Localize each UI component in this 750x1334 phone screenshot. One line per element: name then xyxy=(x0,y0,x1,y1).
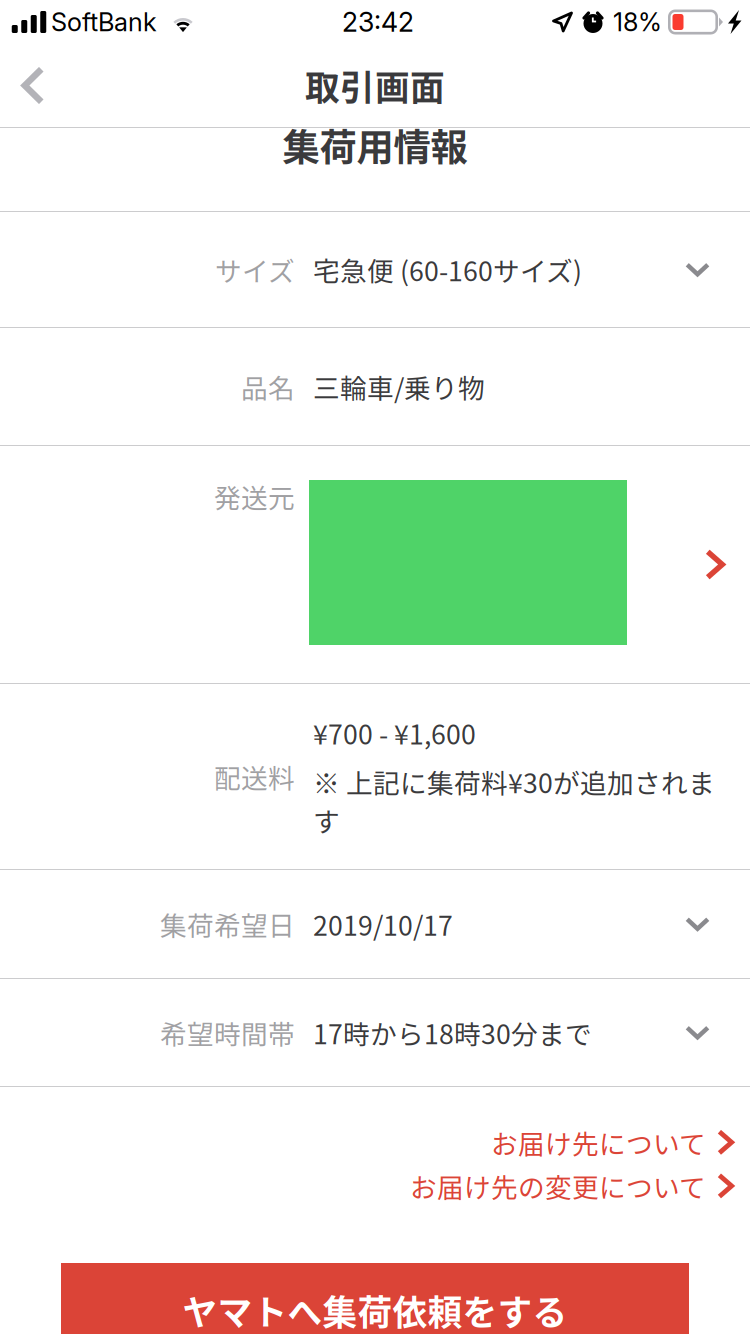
button[interactable]: 集荷希望日 xyxy=(0,870,750,978)
staticText: サイズ xyxy=(215,250,295,289)
staticText: お届け先について xyxy=(491,1123,706,1162)
staticText: 23:42 xyxy=(342,6,414,38)
staticText: 18% xyxy=(613,7,662,37)
button[interactable]: ヤマトへ集荷依頼をする xyxy=(61,1263,689,1334)
staticText: 希望時間帯 xyxy=(160,1013,295,1052)
staticText: ¥700 - ¥1,600 xyxy=(313,714,476,752)
staticText: 2019/10/17 xyxy=(313,905,453,943)
staticText: お届け先の変更について xyxy=(410,1167,706,1205)
staticText: ※ 上記に集荷料¥30が追加されます xyxy=(313,762,715,839)
button[interactable]: お届け先の変更について xyxy=(410,1167,734,1205)
staticText: 発送元 xyxy=(214,477,295,516)
button[interactable]: お届け先について xyxy=(491,1123,734,1162)
staticText: 宅急便 (60-160サイズ) xyxy=(313,250,582,289)
staticText: 配送料 xyxy=(214,757,295,796)
staticText: 取引画面 xyxy=(305,60,445,111)
staticText: 集荷用情報 xyxy=(282,118,467,172)
staticText: 品名 xyxy=(241,367,295,406)
button[interactable]: 発送元 xyxy=(0,446,750,683)
staticText: 三輪車/乗り物 xyxy=(313,367,485,406)
staticText: ヤマトへ集荷依頼をする xyxy=(182,1285,567,1334)
staticText: 集荷希望日 xyxy=(160,905,295,943)
staticText: SoftBank xyxy=(51,7,157,37)
button[interactable]: 戻る xyxy=(0,46,66,125)
button[interactable]: サイズ xyxy=(0,212,750,327)
button[interactable]: 希望時間帯 xyxy=(0,979,750,1086)
staticText: 17時から18時30分まで xyxy=(313,1013,592,1052)
